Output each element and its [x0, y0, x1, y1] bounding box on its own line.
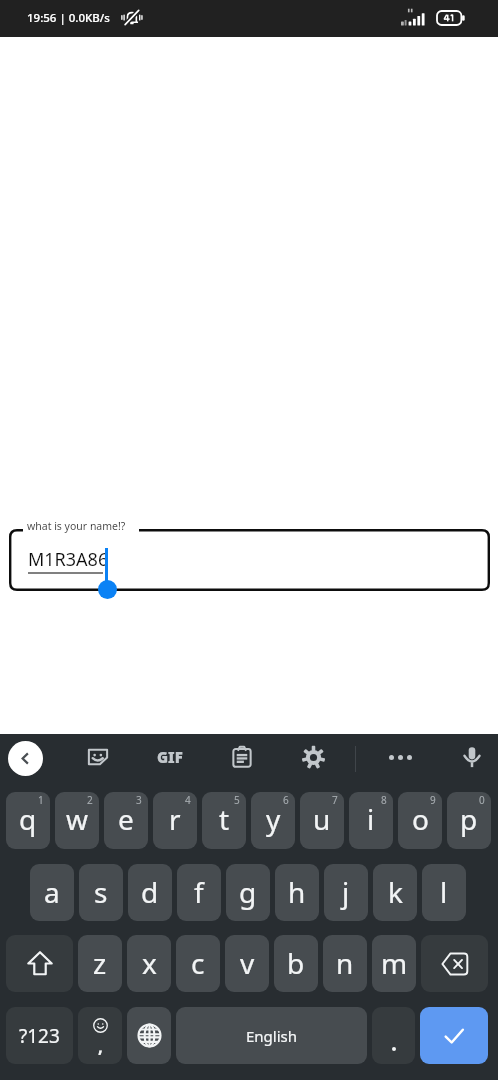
staticText: p: [460, 800, 478, 838]
staticText: 1: [38, 793, 44, 807]
staticText: g: [239, 873, 257, 911]
button[interactable]: Settings: [295, 739, 331, 775]
button[interactable]: Switch language: [127, 1007, 171, 1064]
staticText: ,: [98, 1035, 103, 1058]
staticText: 8: [381, 793, 387, 807]
button[interactable]: 7: [300, 792, 344, 849]
button[interactable]: 3: [104, 792, 148, 849]
button[interactable]: Emoji and comma: [78, 1007, 122, 1064]
button[interactable]: s: [79, 864, 123, 921]
button[interactable]: Stickers: [80, 739, 116, 775]
staticText: l: [440, 873, 448, 911]
staticText: u: [313, 800, 331, 838]
button[interactable]: 9: [398, 792, 442, 849]
staticText: z: [93, 944, 107, 982]
button[interactable]: l: [422, 864, 466, 921]
staticText: j: [342, 873, 350, 911]
button[interactable]: v: [225, 935, 269, 992]
button[interactable]: Period: [372, 1007, 415, 1064]
staticText: i: [367, 800, 375, 838]
staticText: x: [142, 944, 157, 982]
button[interactable]: c: [176, 935, 220, 992]
staticText: a: [44, 873, 60, 911]
button[interactable]: 1: [6, 792, 50, 849]
button[interactable]: English: [176, 1007, 367, 1064]
staticText: 6: [283, 793, 289, 807]
staticText: y: [266, 800, 281, 838]
staticText: w: [66, 800, 89, 838]
staticText: n: [336, 944, 354, 982]
staticText: 5: [234, 793, 240, 807]
staticText: c: [191, 944, 205, 982]
staticText: t: [219, 800, 230, 838]
button[interactable]: 6: [251, 792, 295, 849]
staticText: r: [169, 800, 181, 838]
staticText: q: [19, 800, 37, 838]
button[interactable]: g: [226, 864, 270, 921]
button[interactable]: h: [275, 864, 319, 921]
staticText: o: [412, 800, 429, 838]
button[interactable]: 4: [153, 792, 197, 849]
staticText: m: [381, 944, 408, 982]
staticText: GIF: [157, 747, 183, 767]
button[interactable]: 5: [202, 792, 246, 849]
button[interactable]: 2: [55, 792, 99, 849]
button[interactable]: d: [128, 864, 172, 921]
button[interactable]: n: [323, 935, 367, 992]
staticText: 9: [430, 793, 436, 807]
button[interactable]: z: [78, 935, 122, 992]
staticText: 2: [87, 793, 93, 807]
button[interactable]: 8: [349, 792, 393, 849]
staticText: h: [288, 873, 306, 911]
button[interactable]: ?123: [6, 1007, 73, 1064]
staticText: 19:56 | 0.0KB/s: [27, 10, 110, 26]
staticText: 4: [185, 793, 191, 807]
staticText: e: [118, 800, 134, 838]
button[interactable]: More options: [382, 739, 418, 775]
button[interactable]: a: [30, 864, 74, 921]
button[interactable]: Voice input: [454, 739, 490, 775]
button[interactable]: k: [373, 864, 417, 921]
staticText: b: [287, 944, 305, 982]
button[interactable]: GIF: [150, 739, 190, 775]
staticText: s: [94, 873, 108, 911]
staticText: v: [240, 944, 255, 982]
staticText: k: [388, 873, 403, 911]
button[interactable]: m: [372, 935, 416, 992]
button[interactable]: Shift: [6, 935, 73, 992]
staticText: ?123: [19, 1023, 60, 1049]
staticText: 3: [136, 793, 142, 807]
staticText: d: [141, 873, 159, 911]
button[interactable]: 0: [447, 792, 491, 849]
button[interactable]: b: [274, 935, 318, 992]
button[interactable]: Back: [8, 741, 43, 776]
staticText: 7: [332, 793, 338, 807]
staticText: 0: [479, 793, 485, 807]
staticText: what is your name!?: [27, 519, 126, 533]
button[interactable]: Enter: [420, 1007, 488, 1064]
button[interactable]: Backspace: [421, 935, 488, 992]
staticText: English: [246, 1026, 298, 1046]
button[interactable]: x: [127, 935, 171, 992]
button[interactable]: j: [324, 864, 368, 921]
button[interactable]: Clipboard: [224, 739, 260, 775]
staticText: M1R3A86: [28, 547, 109, 572]
staticText: f: [194, 873, 204, 911]
button[interactable]: f: [177, 864, 221, 921]
